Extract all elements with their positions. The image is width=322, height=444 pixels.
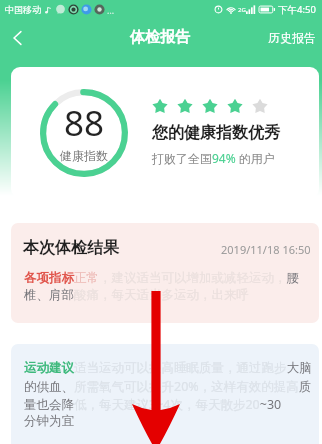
staticText: 中国移动	[5, 4, 41, 15]
staticText: 历史报告	[268, 30, 316, 45]
staticText: 下午4:50	[278, 3, 316, 16]
staticText: 健康指数	[60, 148, 108, 163]
button[interactable]: 88	[11, 67, 319, 198]
button[interactable]: 本次体检结果	[11, 223, 319, 323]
staticText: 椎、肩部酸痛，每天适当多运动，出来呼	[24, 287, 314, 303]
staticText: 本次体检结果	[23, 238, 119, 258]
staticText: …	[107, 4, 115, 16]
button[interactable]: 运动建议适当运动可以提高睡眠质量，通过跑步大脑	[11, 344, 319, 444]
staticText: 分钟为宜	[24, 413, 74, 429]
staticText: 2G	[238, 6, 246, 14]
staticText: 的供血、所需氧气可以提升20%，这样有效的提高质	[24, 378, 316, 395]
button[interactable]: 返回	[0, 19, 34, 56]
staticText: 打败了全国94% 的用户	[152, 150, 275, 166]
staticText: 量也会降低，每天建议3~4次，每天散步20~30	[24, 396, 316, 413]
button[interactable]: 历史报告	[262, 19, 322, 56]
staticText: 运动建议适当运动可以提高睡眠质量，通过跑步大脑	[24, 360, 316, 376]
staticText: 体检报告	[130, 28, 190, 47]
staticText: 各项指标正常，建议适当可以增加或减轻运动，腰	[24, 270, 314, 286]
staticText: 2019/11/18 16:50	[221, 242, 311, 257]
staticText: 您的健康指数优秀	[152, 123, 280, 143]
staticText: 88	[64, 99, 105, 147]
